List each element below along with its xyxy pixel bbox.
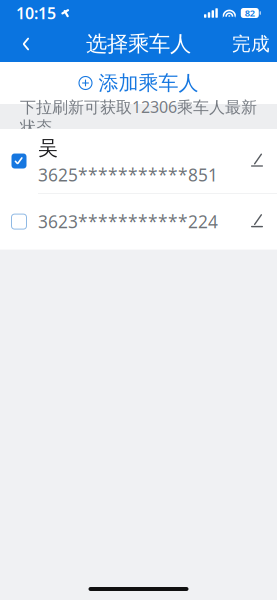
- button[interactable]: 返回: [4, 26, 48, 62]
- staticText: 10:15: [16, 2, 56, 24]
- button[interactable]: 3623***********224: [0, 194, 277, 250]
- button[interactable]: 添加乘车人: [0, 62, 277, 104]
- staticText: 选择乘车人: [86, 31, 191, 57]
- staticText: 下拉刷新可获取12306乘车人最新状态: [20, 96, 257, 137]
- button[interactable]: 吴: [0, 129, 277, 193]
- staticText: 3623***********224: [38, 210, 218, 233]
- staticText: 3625***********851: [38, 163, 218, 186]
- button[interactable]: 完成: [229, 26, 273, 62]
- staticText: 添加乘车人: [98, 71, 198, 95]
- staticText: 吴: [38, 136, 58, 160]
- staticText: 完成: [232, 32, 270, 55]
- staticText: 82: [245, 7, 255, 19]
